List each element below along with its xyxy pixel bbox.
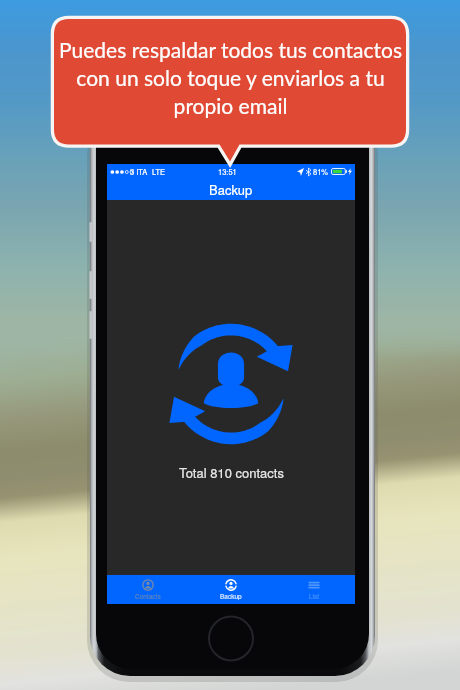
staticText: 3 ITA	[130, 166, 148, 177]
staticText: 81%	[313, 166, 329, 177]
staticText: LTE	[152, 166, 165, 177]
staticText: Backup	[209, 180, 253, 199]
staticText: 13:51	[218, 166, 237, 177]
button[interactable]: Backup	[107, 179, 355, 200]
staticText: Total 810 contacts	[179, 463, 284, 482]
staticText: Contacts	[135, 592, 161, 601]
staticText: Backup	[220, 592, 242, 601]
button[interactable]: Contacts	[107, 575, 189, 604]
button[interactable]: Backup	[189, 575, 272, 604]
button[interactable]: List	[272, 575, 355, 604]
staticText: Puedes respaldar todos tus contactos con…	[59, 37, 402, 119]
staticText: List	[309, 592, 320, 601]
